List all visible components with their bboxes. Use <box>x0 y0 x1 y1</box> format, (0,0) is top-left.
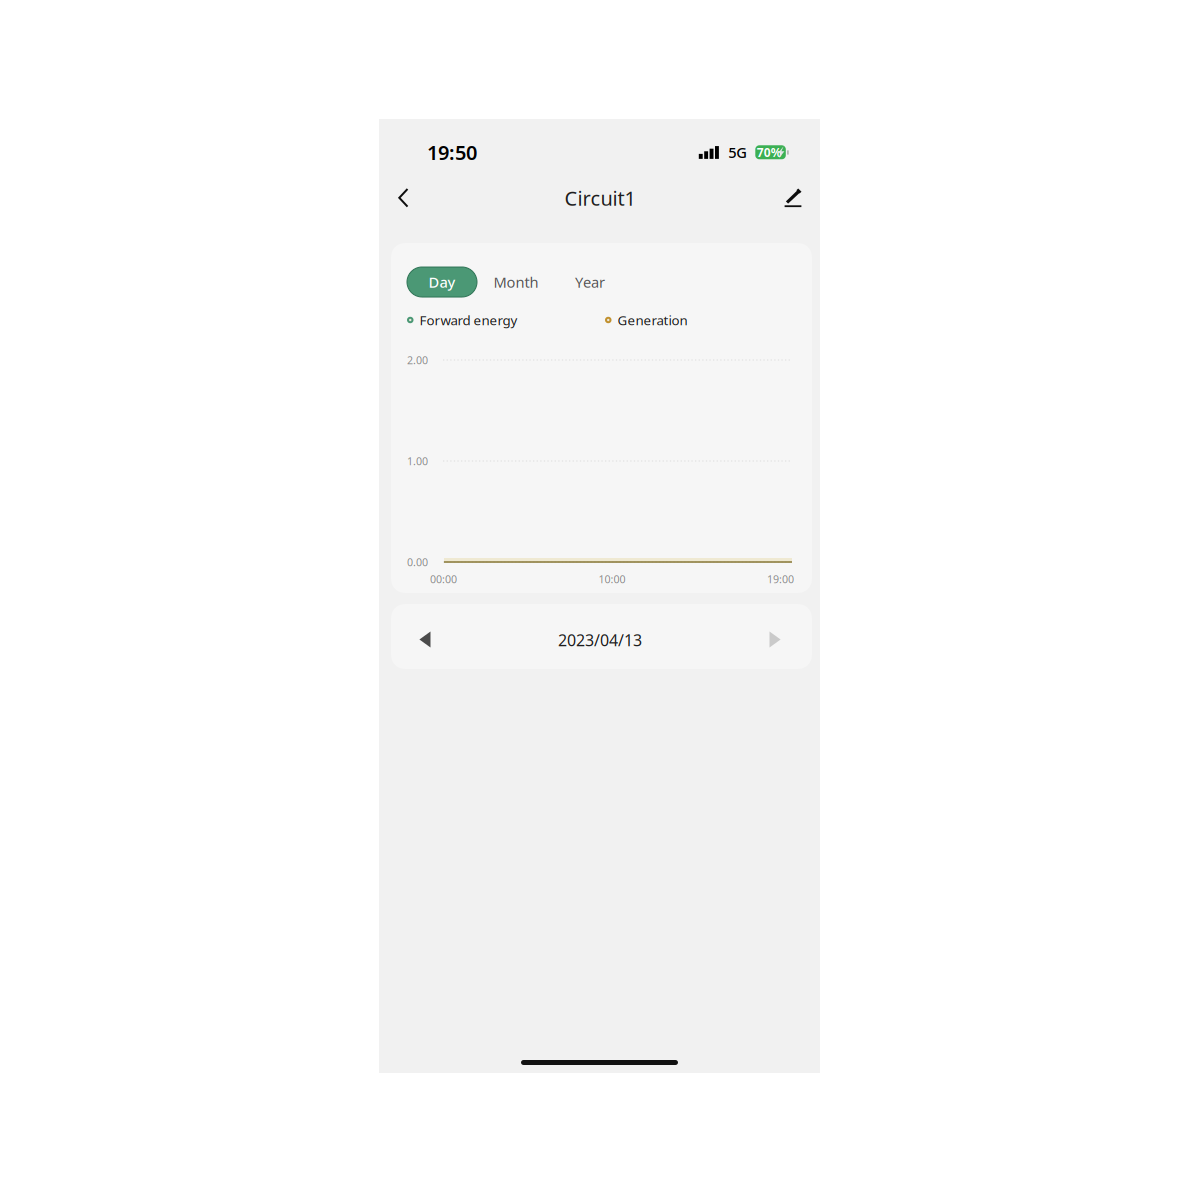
staticText: 0.00 <box>407 555 428 569</box>
button[interactable]: Edit <box>762 176 802 220</box>
button[interactable]: Back <box>398 176 438 220</box>
staticText: 5G <box>728 142 747 162</box>
button[interactable]: Next day <box>753 612 797 660</box>
staticText: 10:00 <box>598 572 625 586</box>
staticText: 2.00 <box>407 353 428 367</box>
staticText: 70% <box>757 144 782 160</box>
staticText: Circuit1 <box>564 185 635 211</box>
staticText: 1.00 <box>407 454 428 468</box>
staticText: 19:00 <box>767 572 794 586</box>
button[interactable]: Month <box>477 267 555 297</box>
staticText: Day <box>428 272 455 292</box>
staticText: Generation <box>617 311 687 329</box>
button[interactable]: Day <box>407 267 477 297</box>
staticText: Forward energy <box>419 311 517 329</box>
button[interactable]: Year <box>555 267 625 297</box>
staticText: Year <box>575 272 605 292</box>
staticText: 2023/04/13 <box>558 629 642 651</box>
staticText: 19:50 <box>427 139 477 166</box>
staticText: 00:00 <box>430 572 457 586</box>
button[interactable]: Previous day <box>403 612 447 660</box>
staticText: Month <box>493 272 538 292</box>
